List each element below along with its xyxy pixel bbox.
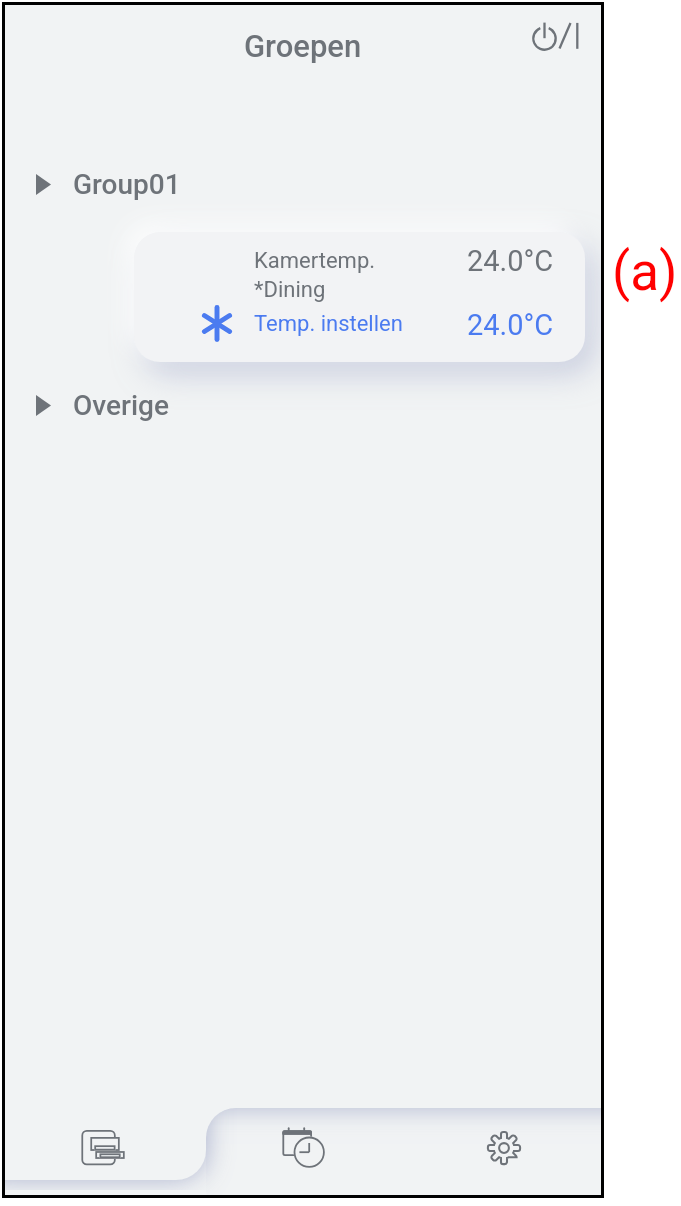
staticText: Overige: [73, 389, 169, 422]
button[interactable]: Kamertemp.: [134, 232, 585, 362]
staticText: Group01: [73, 168, 181, 201]
button[interactable]: Overige: [5, 383, 601, 429]
button[interactable]: Schedule: [206, 1100, 412, 1190]
button[interactable]: Power on off: [520, 13, 592, 69]
staticText: 24.0°C: [467, 244, 554, 278]
staticText: Temp. instellen: [254, 311, 403, 337]
button[interactable]: Group01: [5, 162, 601, 208]
staticText: (a): [612, 241, 678, 303]
button[interactable]: Settings: [412, 1100, 601, 1190]
staticText: *Dining: [254, 277, 326, 303]
staticText: Kamertemp.: [254, 248, 376, 274]
button[interactable]: Groups: [5, 1070, 206, 1180]
staticText: 24.0°C: [467, 308, 554, 342]
staticText: Groepen: [244, 28, 362, 64]
